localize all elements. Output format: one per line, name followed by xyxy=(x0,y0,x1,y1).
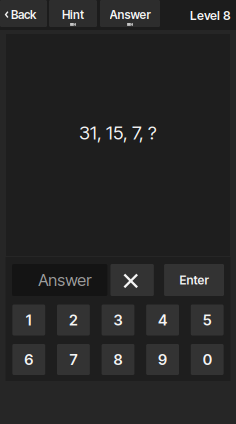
staticText: Answer xyxy=(38,270,91,290)
staticText: Level 8 xyxy=(190,8,231,23)
button[interactable]: 9 xyxy=(146,344,179,375)
staticText: Enter xyxy=(180,273,209,287)
button[interactable]: Hint xyxy=(49,0,97,27)
staticText: 5 xyxy=(203,311,212,329)
staticText: Hint xyxy=(62,7,84,22)
staticText: 1 xyxy=(26,311,32,329)
button[interactable]: Answer xyxy=(100,0,160,27)
staticText: 4 xyxy=(158,311,167,329)
button[interactable]: 2 xyxy=(57,304,90,335)
staticText: 2 xyxy=(69,311,78,329)
button[interactable]: 4 xyxy=(146,304,179,335)
staticText: 6 xyxy=(24,350,33,369)
staticText: Back xyxy=(11,7,36,22)
button[interactable]: Enter xyxy=(164,264,224,296)
button[interactable]: 5 xyxy=(191,304,224,335)
staticText: 9 xyxy=(158,350,167,369)
staticText: 3 xyxy=(113,311,122,329)
button[interactable]: Back xyxy=(0,0,47,27)
button[interactable]: 3 xyxy=(102,304,134,335)
button[interactable]: 6 xyxy=(12,344,45,375)
staticText: Answer xyxy=(109,7,150,22)
staticText: 0 xyxy=(203,350,212,369)
button[interactable]: 7 xyxy=(57,344,90,375)
button[interactable]: 0 xyxy=(191,344,224,375)
staticText: 7 xyxy=(69,350,77,369)
staticText: 31, 15, 7, ? xyxy=(79,121,157,144)
staticText: 8 xyxy=(113,350,122,369)
button[interactable]: Clear xyxy=(110,264,154,296)
button[interactable]: 1 xyxy=(12,304,45,335)
button[interactable]: 8 xyxy=(102,344,134,375)
